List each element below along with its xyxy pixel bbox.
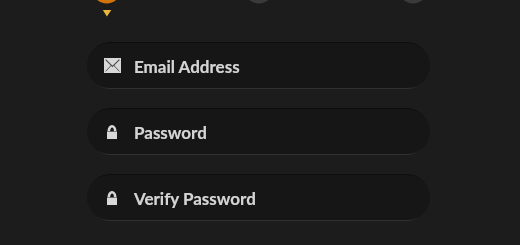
button[interactable]: Email Address	[87, 42, 430, 89]
button[interactable]: Password	[87, 108, 430, 155]
staticText: Password	[134, 122, 207, 142]
button[interactable]: Verify Password	[87, 174, 430, 221]
staticText: Verify Password	[134, 188, 256, 208]
staticText: Email Address	[134, 56, 240, 76]
